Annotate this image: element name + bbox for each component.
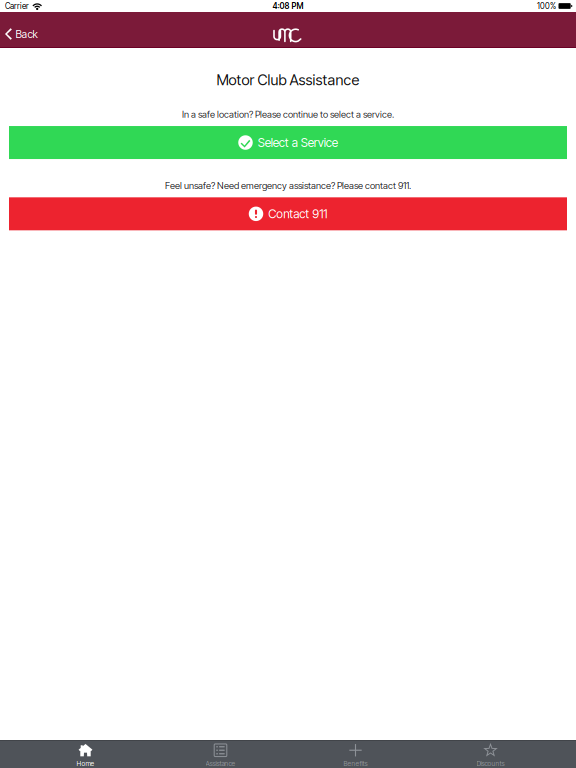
staticText: Contact 911	[268, 207, 327, 221]
button[interactable]: Back	[0, 22, 45, 46]
staticText: Motor Club Assistance	[216, 71, 359, 89]
button[interactable]: Home	[18, 740, 153, 768]
staticText: Select a Service	[258, 135, 338, 150]
staticText: Feel unsafe? Need emergency assistance? …	[165, 180, 411, 191]
staticText: 100%	[537, 1, 556, 11]
staticText: Assistance	[205, 759, 235, 768]
staticText: Carrier	[5, 1, 29, 11]
staticText: In a safe location? Please continue to s…	[182, 109, 394, 120]
button[interactable]: Assistance	[153, 740, 288, 768]
staticText: 4:08 PM	[272, 1, 303, 11]
button[interactable]: Contact 911	[9, 197, 567, 230]
button[interactable]: Select a Service	[9, 126, 567, 159]
staticText: Benefits	[343, 759, 367, 768]
button[interactable]: Discounts	[423, 740, 558, 768]
staticText: Back	[15, 27, 37, 40]
button[interactable]: Benefits	[288, 740, 423, 768]
staticText: Discounts	[476, 759, 504, 768]
staticText: Home	[76, 759, 94, 768]
